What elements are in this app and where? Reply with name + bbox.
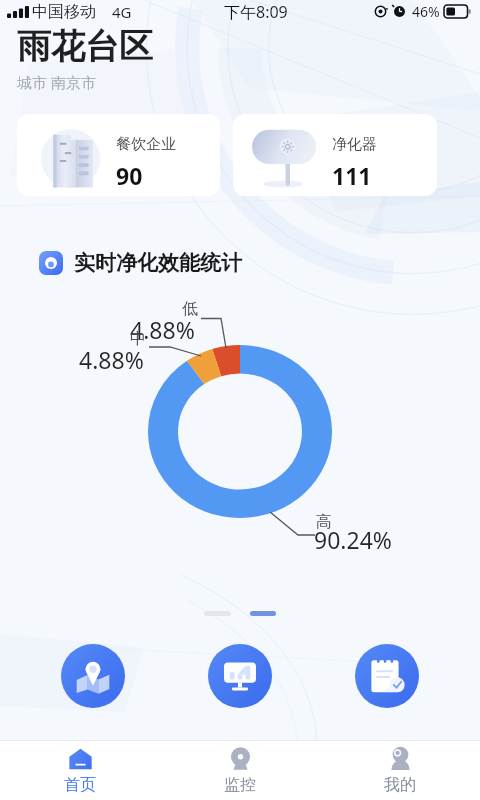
staticText: 中国移动	[32, 2, 96, 22]
button[interactable]: Records	[355, 644, 419, 708]
button[interactable]	[250, 611, 276, 616]
button[interactable]: Map	[61, 644, 125, 708]
staticText: 首页	[64, 775, 96, 795]
staticText: 4.88%	[79, 344, 144, 375]
staticText: 中	[130, 329, 146, 349]
other: Location	[374, 5, 387, 18]
staticText: 下午8:09	[224, 1, 288, 23]
button[interactable]: 净化器	[233, 114, 437, 196]
button[interactable]: 餐饮企业	[17, 114, 220, 196]
staticText: 46%	[412, 2, 440, 21]
button[interactable]: 我的	[320, 741, 480, 800]
staticText: 实时净化效能统计	[74, 250, 242, 276]
button[interactable]: 首页	[0, 741, 160, 800]
staticText: 雨花台区	[17, 25, 153, 68]
other: Alarm	[393, 5, 406, 18]
staticText: 净化器	[332, 135, 377, 154]
staticText: 90	[116, 160, 143, 191]
staticText: 111	[332, 160, 372, 191]
staticText: 4.88%	[130, 314, 195, 345]
button[interactable]: Statistics	[208, 644, 272, 708]
staticText: 90.24%	[314, 524, 392, 555]
staticText: 我的	[384, 775, 416, 795]
staticText: 高	[316, 512, 332, 532]
staticText: 低	[182, 299, 198, 319]
staticText: 城市 南京市	[17, 72, 96, 92]
staticText: 餐饮企业	[116, 135, 176, 154]
staticText: 4G	[112, 2, 132, 22]
button[interactable]: 监控	[160, 741, 320, 800]
staticText: 监控	[224, 775, 256, 795]
